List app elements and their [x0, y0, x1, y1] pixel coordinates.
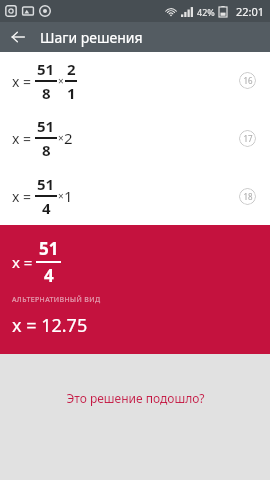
staticText: x = [12, 72, 32, 91]
button[interactable]: x = [0, 225, 270, 354]
staticText: АЛЬТЕРНАТИВНЫЙ ВИД [12, 295, 101, 305]
staticText: × [58, 74, 64, 88]
staticText: Это решение подошло? [66, 390, 205, 406]
staticText: 2 [64, 128, 73, 148]
staticText: x = [12, 129, 32, 148]
staticText: 51 [37, 174, 55, 194]
staticText: Шаги решения [40, 28, 143, 47]
button[interactable]: Это решение подошло? [56, 386, 215, 410]
staticText: 4 [44, 264, 54, 287]
staticText: × [58, 131, 64, 145]
staticText: 18 [243, 191, 253, 202]
button[interactable]: x = [0, 109, 270, 167]
staticText: 42% [197, 6, 215, 18]
staticText: x = [12, 252, 33, 272]
staticText: 22:01 [236, 4, 265, 19]
staticText: 1 [67, 83, 76, 103]
staticText: 51 [37, 116, 55, 136]
button[interactable]: x = [0, 167, 270, 225]
staticText: 17 [243, 133, 253, 144]
button[interactable]: x = [0, 52, 270, 109]
staticText: 16 [243, 75, 253, 86]
staticText: 8 [42, 83, 51, 103]
staticText: 4 [42, 198, 51, 218]
staticText: 8 [42, 140, 51, 160]
staticText: x = 12.75 [12, 313, 88, 338]
staticText: × [58, 189, 64, 203]
staticText: 2 [67, 59, 76, 79]
staticText: 51 [37, 59, 55, 79]
staticText: 51 [39, 237, 59, 260]
staticText: x = [12, 187, 32, 206]
button[interactable]: Back [5, 24, 31, 50]
staticText: 1 [64, 186, 73, 206]
